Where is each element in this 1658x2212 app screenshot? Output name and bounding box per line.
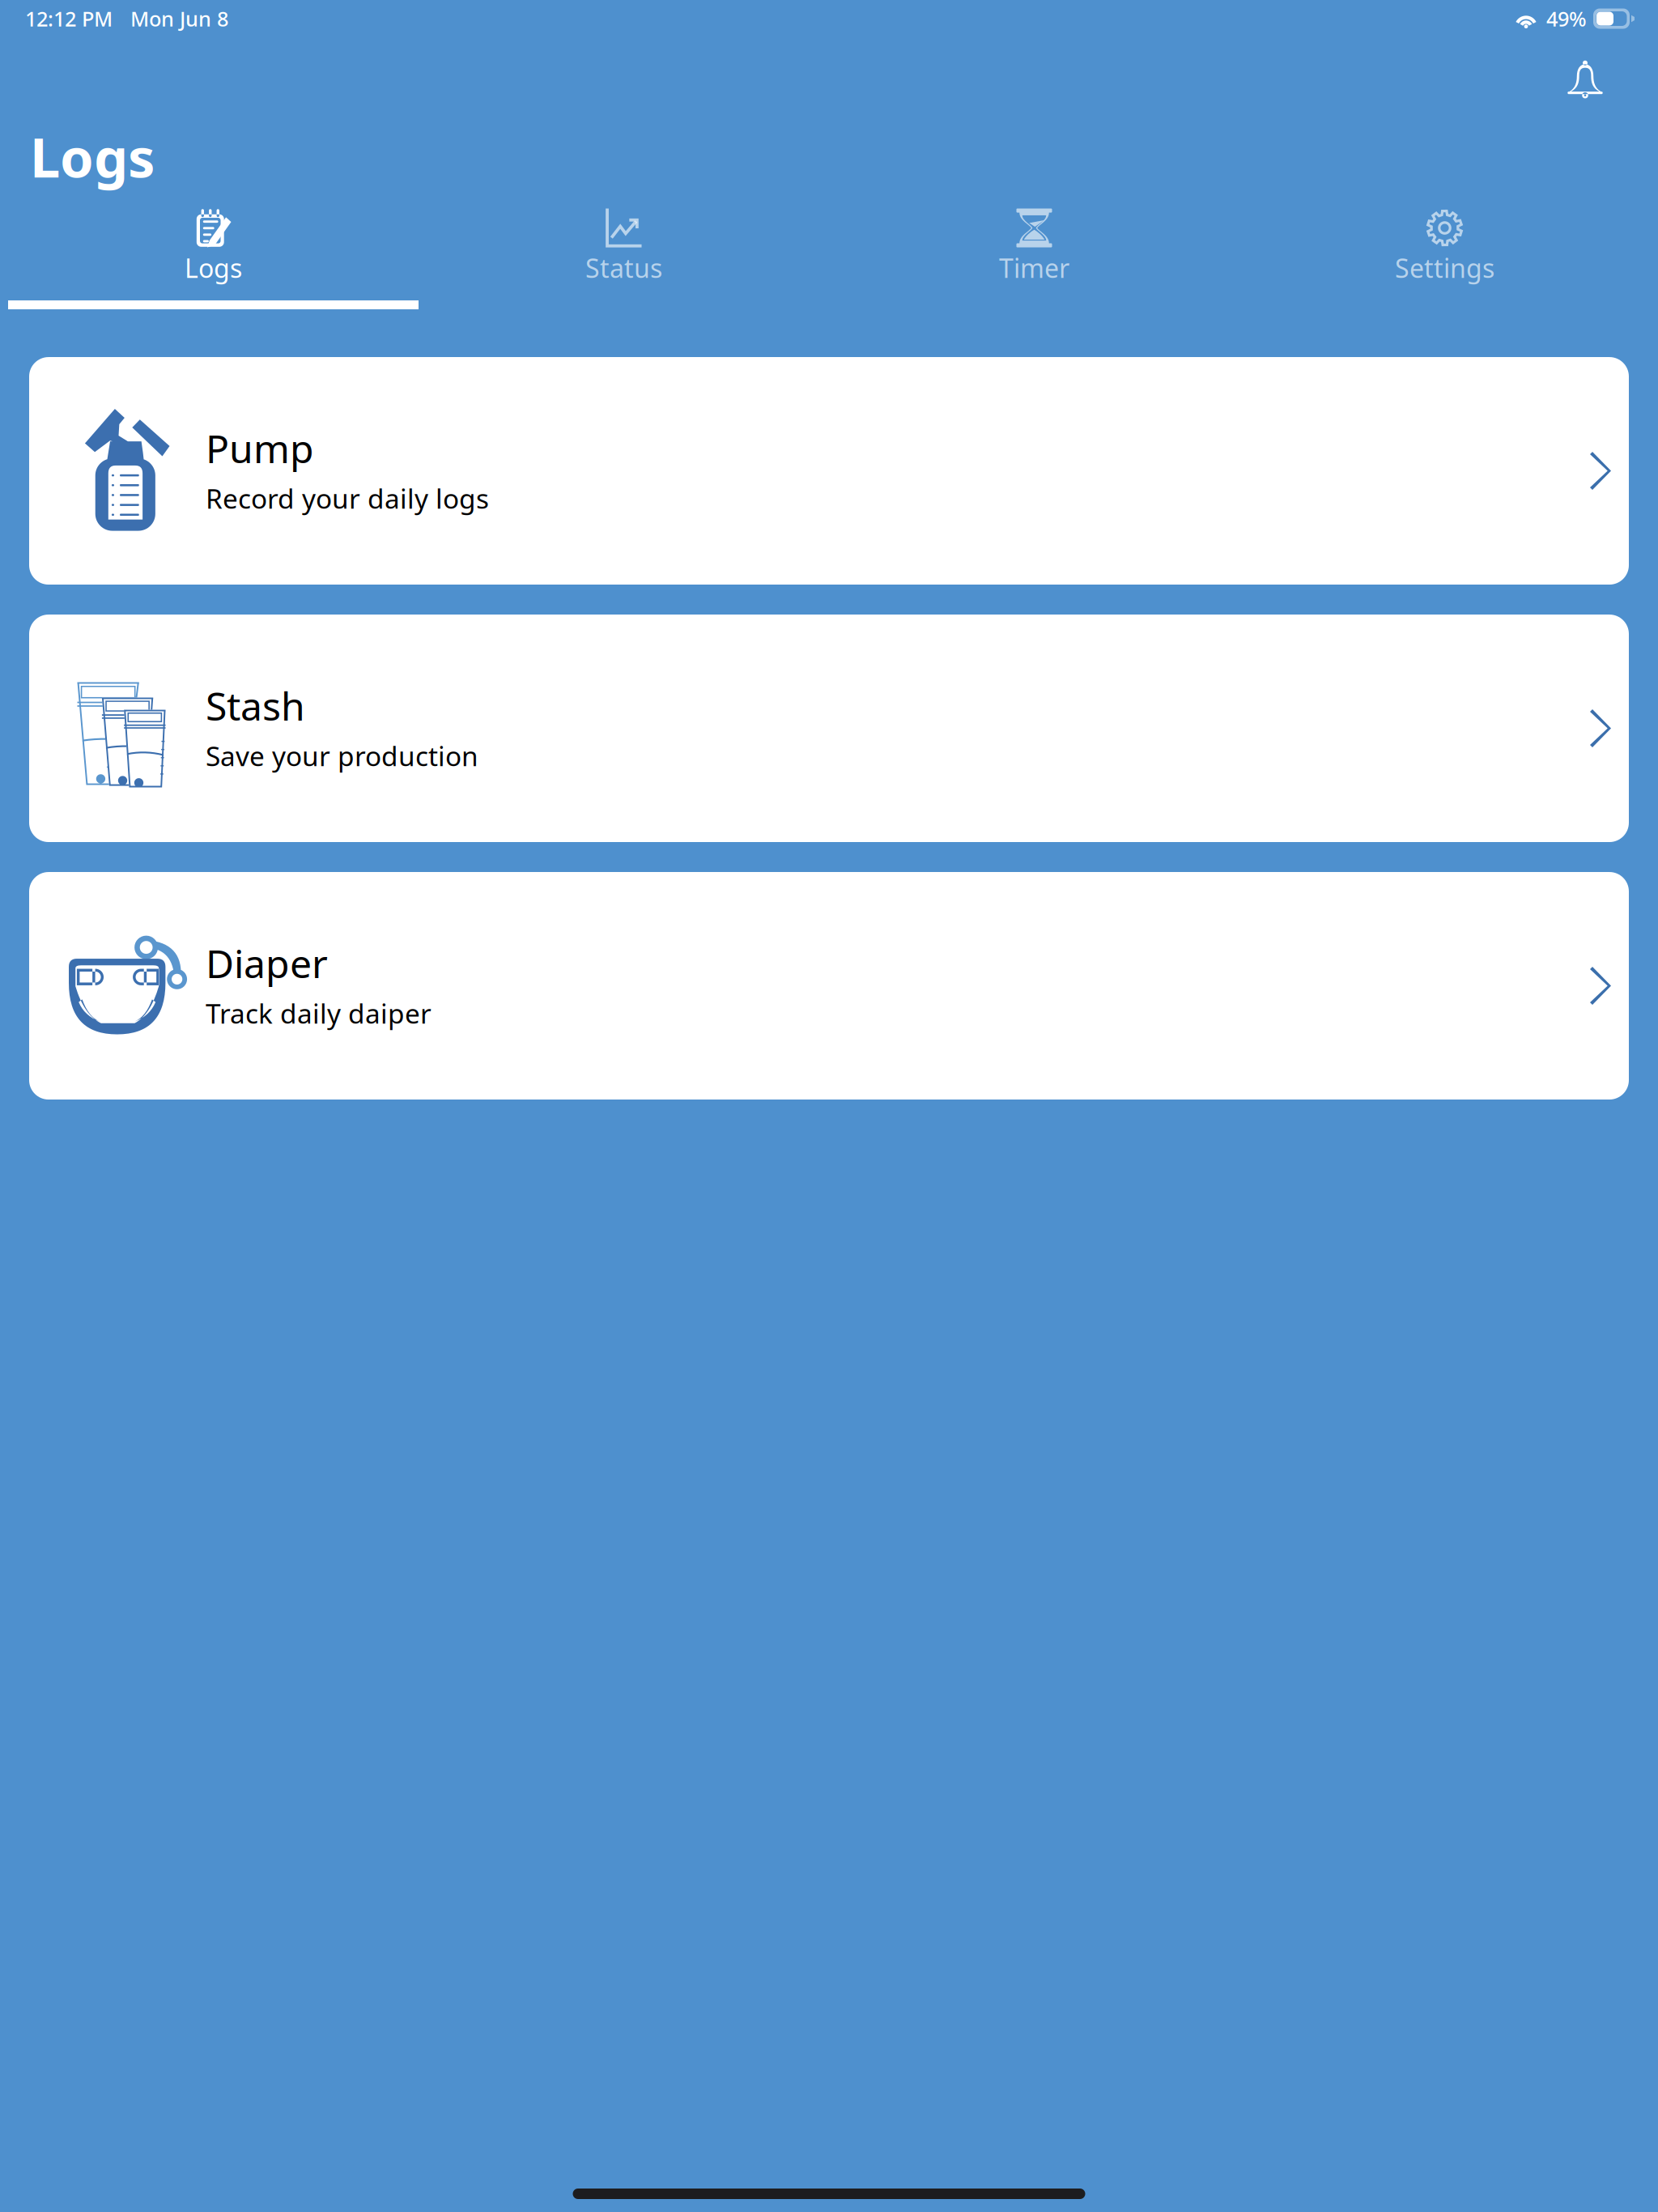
button[interactable]: Settings: [1239, 208, 1650, 309]
button[interactable]: Timer: [829, 208, 1239, 309]
button[interactable]: Status: [419, 208, 829, 309]
staticText: Diaper: [206, 937, 328, 989]
staticText: Logs: [185, 251, 242, 285]
staticText: Stash: [206, 680, 305, 731]
staticText: Status: [585, 251, 662, 285]
staticText: Timer: [999, 251, 1069, 285]
button[interactable]: Pump: [29, 357, 1629, 585]
button[interactable]: Logs: [8, 208, 419, 309]
button[interactable]: Diaper: [29, 872, 1629, 1100]
staticText: Mon Jun 8: [130, 5, 228, 32]
staticText: Settings: [1395, 251, 1494, 285]
staticText: Record your daily logs: [206, 480, 489, 516]
button[interactable]: Stash: [29, 615, 1629, 842]
staticText: 49%: [1546, 5, 1587, 32]
staticText: Track daily daiper: [206, 995, 432, 1031]
button[interactable]: Notifications: [1550, 41, 1621, 117]
staticText: Logs: [30, 121, 155, 192]
staticText: 12:12 PM: [25, 5, 113, 32]
staticText: Save your production: [206, 738, 478, 774]
staticText: Pump: [206, 422, 314, 474]
